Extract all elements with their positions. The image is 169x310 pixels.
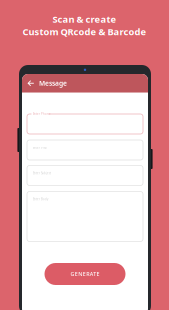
staticText: GENERATE xyxy=(70,270,100,278)
staticText: Enter Body xyxy=(33,197,48,201)
staticText: Enter Subject xyxy=(33,171,51,175)
staticText: Custom QRcode & Barcode xyxy=(22,25,146,38)
button[interactable]: Back xyxy=(27,77,34,89)
button[interactable]: GENERATE xyxy=(44,263,125,285)
staticText: Enter Phone xyxy=(33,112,51,116)
staticText: Scan & create xyxy=(52,13,116,25)
staticText: Enter Visa xyxy=(33,146,46,149)
staticText: Message xyxy=(39,79,67,88)
